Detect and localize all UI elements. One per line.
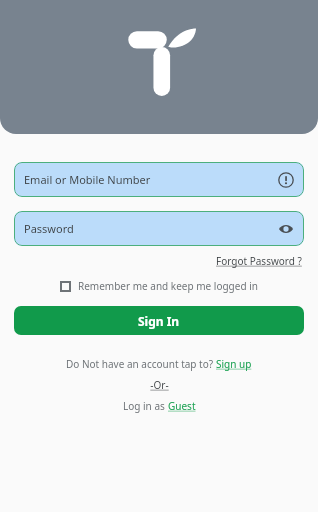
button[interactable]: Guest	[168, 399, 196, 413]
staticText: Sign In	[138, 313, 180, 329]
staticText: Log in as	[123, 399, 168, 413]
button[interactable]: Show password	[278, 221, 294, 237]
button[interactable]: Information	[278, 172, 294, 188]
button[interactable]: Sign In	[14, 306, 304, 335]
staticText: Forgot Password ?	[216, 254, 302, 268]
staticText: Email or Mobile Number	[24, 172, 278, 187]
button[interactable]: Sign up	[216, 357, 252, 371]
button[interactable]: Email or Mobile Number	[14, 162, 304, 197]
button[interactable]: Password	[14, 211, 304, 246]
staticText: -Or-	[150, 378, 169, 392]
button[interactable]: Remember me and keep me logged in	[0, 276, 318, 296]
staticText: Guest	[168, 399, 196, 413]
staticText: Sign up	[216, 357, 252, 371]
button[interactable]: Forgot Password ?	[214, 252, 304, 270]
staticText: Remember me and keep me logged in	[78, 279, 258, 293]
staticText: Password	[24, 221, 278, 236]
staticText: Do Not have an account tap to?	[66, 357, 216, 371]
